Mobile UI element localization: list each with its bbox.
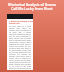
- button[interactable]: Rhetorical Analysis of Drama Call Me Luc…: [0, 0, 64, 13]
- staticText: Rhetorical Analysis of Drama Call Me Luc…: [8, 2, 56, 11]
- staticText: The play opens in a small seaside town w…: [9, 25, 31, 70]
- staticText: A Rhetorical Reading of the Seaside Play: [9, 20, 33, 24]
